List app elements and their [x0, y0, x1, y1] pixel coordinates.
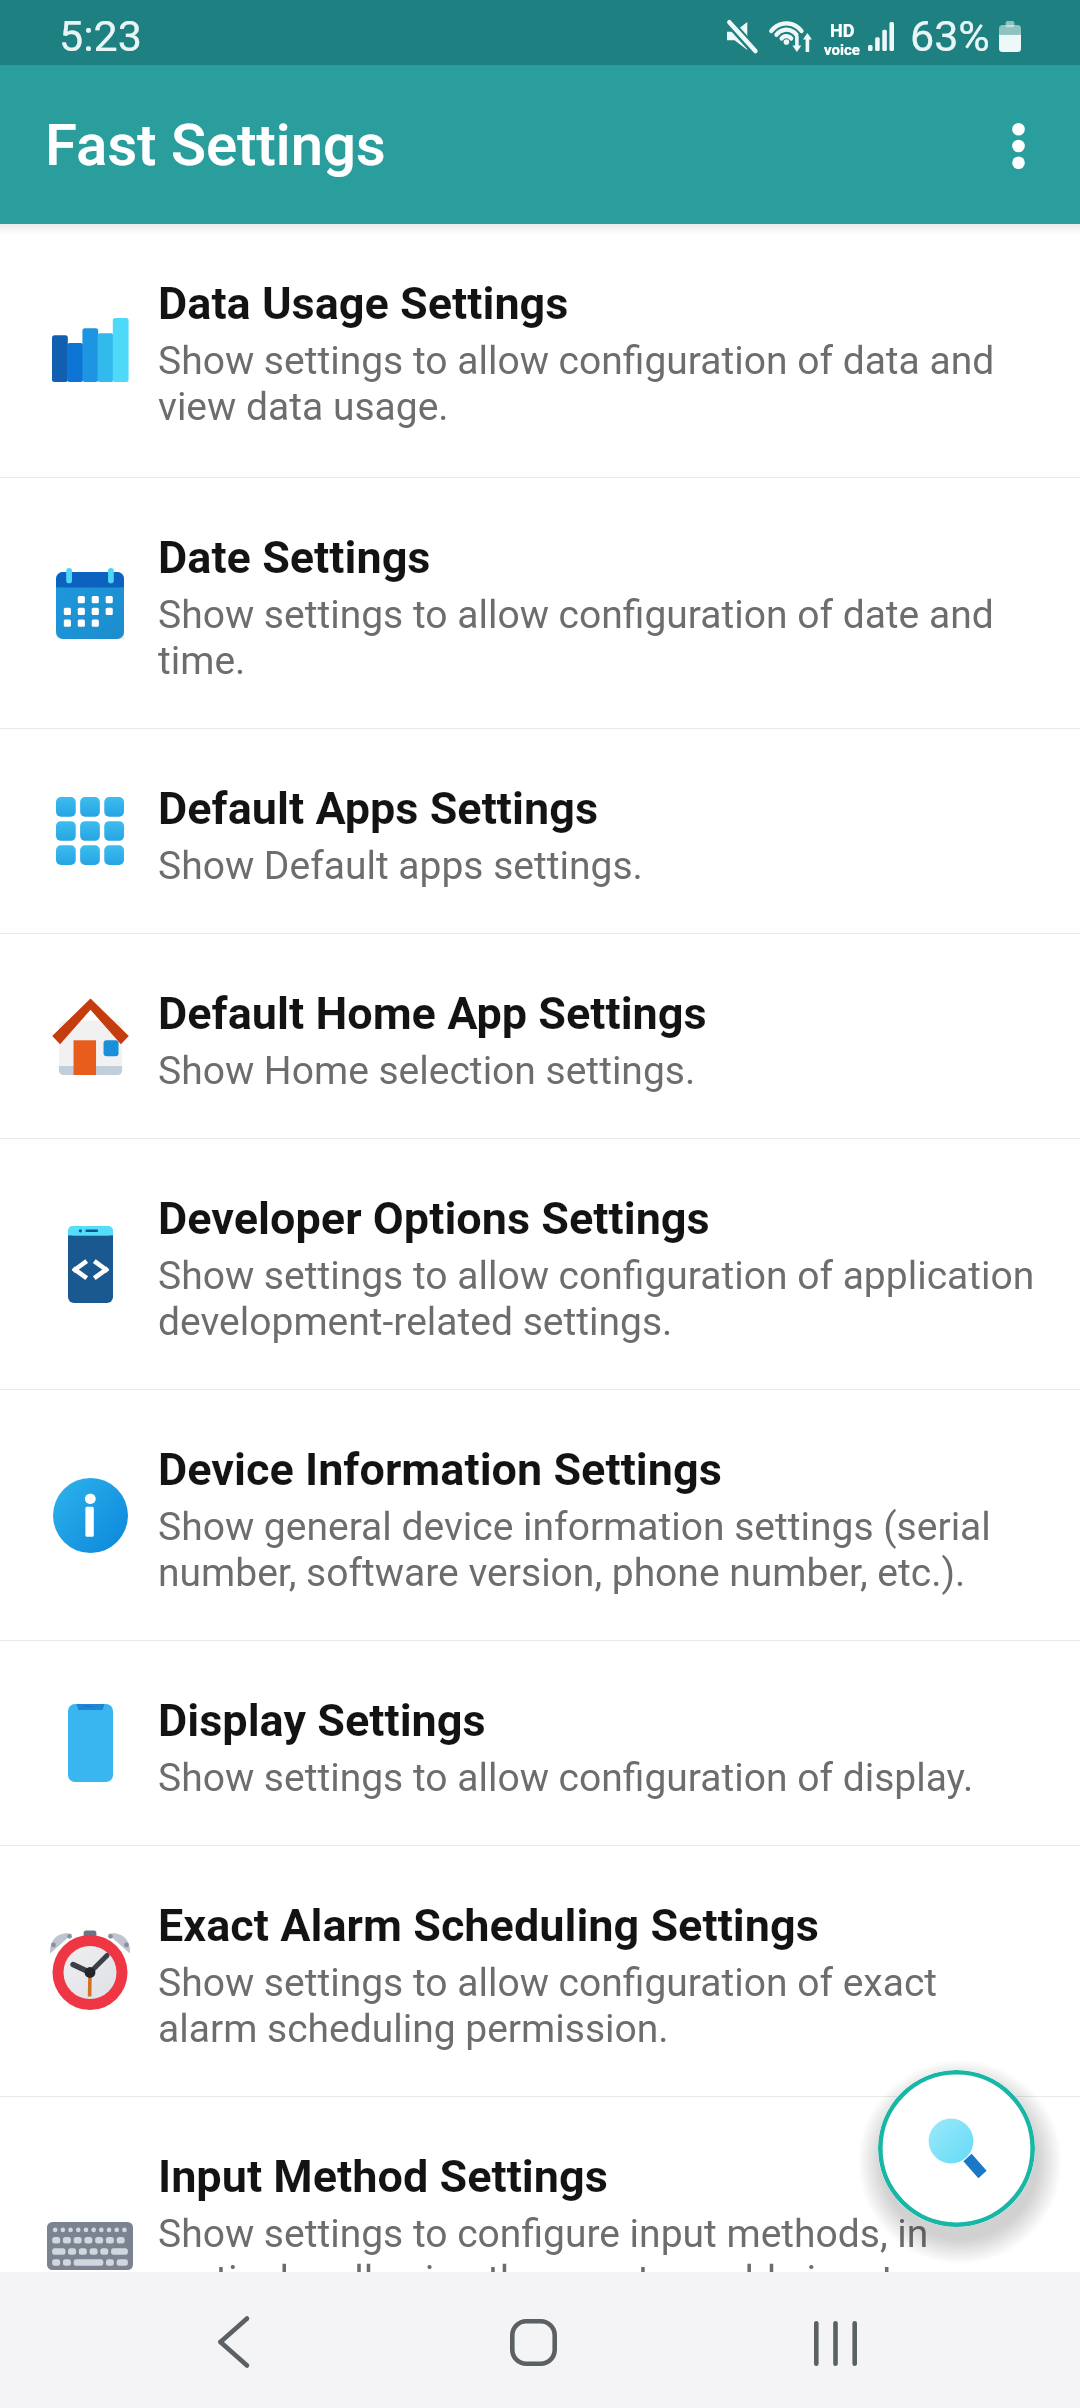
button[interactable]: Input Method Settings: [0, 2097, 1080, 2272]
staticText: Show Default apps settings.: [158, 843, 643, 889]
staticText: Device Information Settings: [158, 1443, 722, 1496]
staticText: Developer Options Settings: [158, 1192, 710, 1245]
button[interactable]: More options: [963, 91, 1073, 201]
staticText: 5:23: [59, 11, 142, 61]
button[interactable]: Default Apps Settings: [0, 729, 1080, 933]
staticText: Show settings to configure input methods…: [158, 2211, 929, 2272]
staticText: Data Usage Settings: [158, 277, 569, 330]
button[interactable]: Recent apps: [765, 2275, 905, 2408]
staticText: Show settings to allow configuration of …: [158, 1960, 938, 2052]
staticText: Show Home selection settings.: [158, 1048, 696, 1094]
staticText: Show settings to allow configuration of …: [158, 1755, 974, 1801]
staticText: Show settings to allow configuration of …: [158, 592, 994, 684]
button[interactable]: Date Settings: [0, 478, 1080, 728]
button[interactable]: Display Settings: [0, 1641, 1080, 1845]
staticText: Default Apps Settings: [158, 782, 599, 835]
button[interactable]: Developer Options Settings: [0, 1139, 1080, 1389]
staticText: Display Settings: [158, 1694, 486, 1747]
button[interactable]: Search: [878, 2070, 1035, 2227]
button[interactable]: Back: [163, 2274, 303, 2408]
staticText: Show settings to allow configuration of …: [158, 1253, 1035, 1345]
button[interactable]: Data Usage Settings: [0, 224, 1080, 477]
staticText: Exact Alarm Scheduling Settings: [158, 1899, 819, 1952]
button[interactable]: Default Home App Settings: [0, 934, 1080, 1138]
button[interactable]: Exact Alarm Scheduling Settings: [0, 1846, 1080, 2096]
staticText: voice: [824, 41, 860, 59]
staticText: Input Method Settings: [158, 2150, 608, 2203]
button[interactable]: Device Information Settings: [0, 1390, 1080, 1640]
staticText: Default Home App Settings: [158, 987, 707, 1040]
staticText: 63%: [910, 11, 990, 61]
staticText: Date Settings: [158, 531, 431, 584]
staticText: Show general device information settings…: [158, 1504, 991, 1596]
staticText: Show settings to allow configuration of …: [158, 338, 995, 430]
staticText: HD: [830, 20, 855, 41]
staticText: Fast Settings: [45, 111, 386, 179]
button[interactable]: Home: [463, 2274, 603, 2408]
